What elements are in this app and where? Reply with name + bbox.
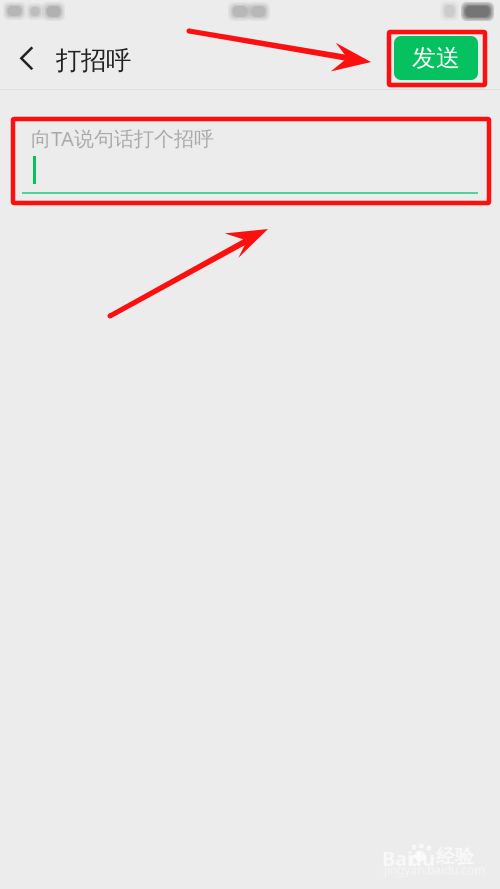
staticText: 向TA说句话打个招呼 xyxy=(31,125,214,152)
staticText: jingyan.baidu.com xyxy=(384,862,485,878)
staticText: 打招呼 xyxy=(56,45,131,76)
button[interactable]: 发送 xyxy=(394,36,478,80)
staticText: Bai xyxy=(382,845,413,872)
button[interactable]: Back xyxy=(0,28,46,90)
staticText: 发送 xyxy=(412,43,460,73)
button[interactable]: 向TA说句话打个招呼 xyxy=(16,122,486,200)
staticText: du xyxy=(409,845,435,872)
staticText: 经验 xyxy=(436,845,474,868)
